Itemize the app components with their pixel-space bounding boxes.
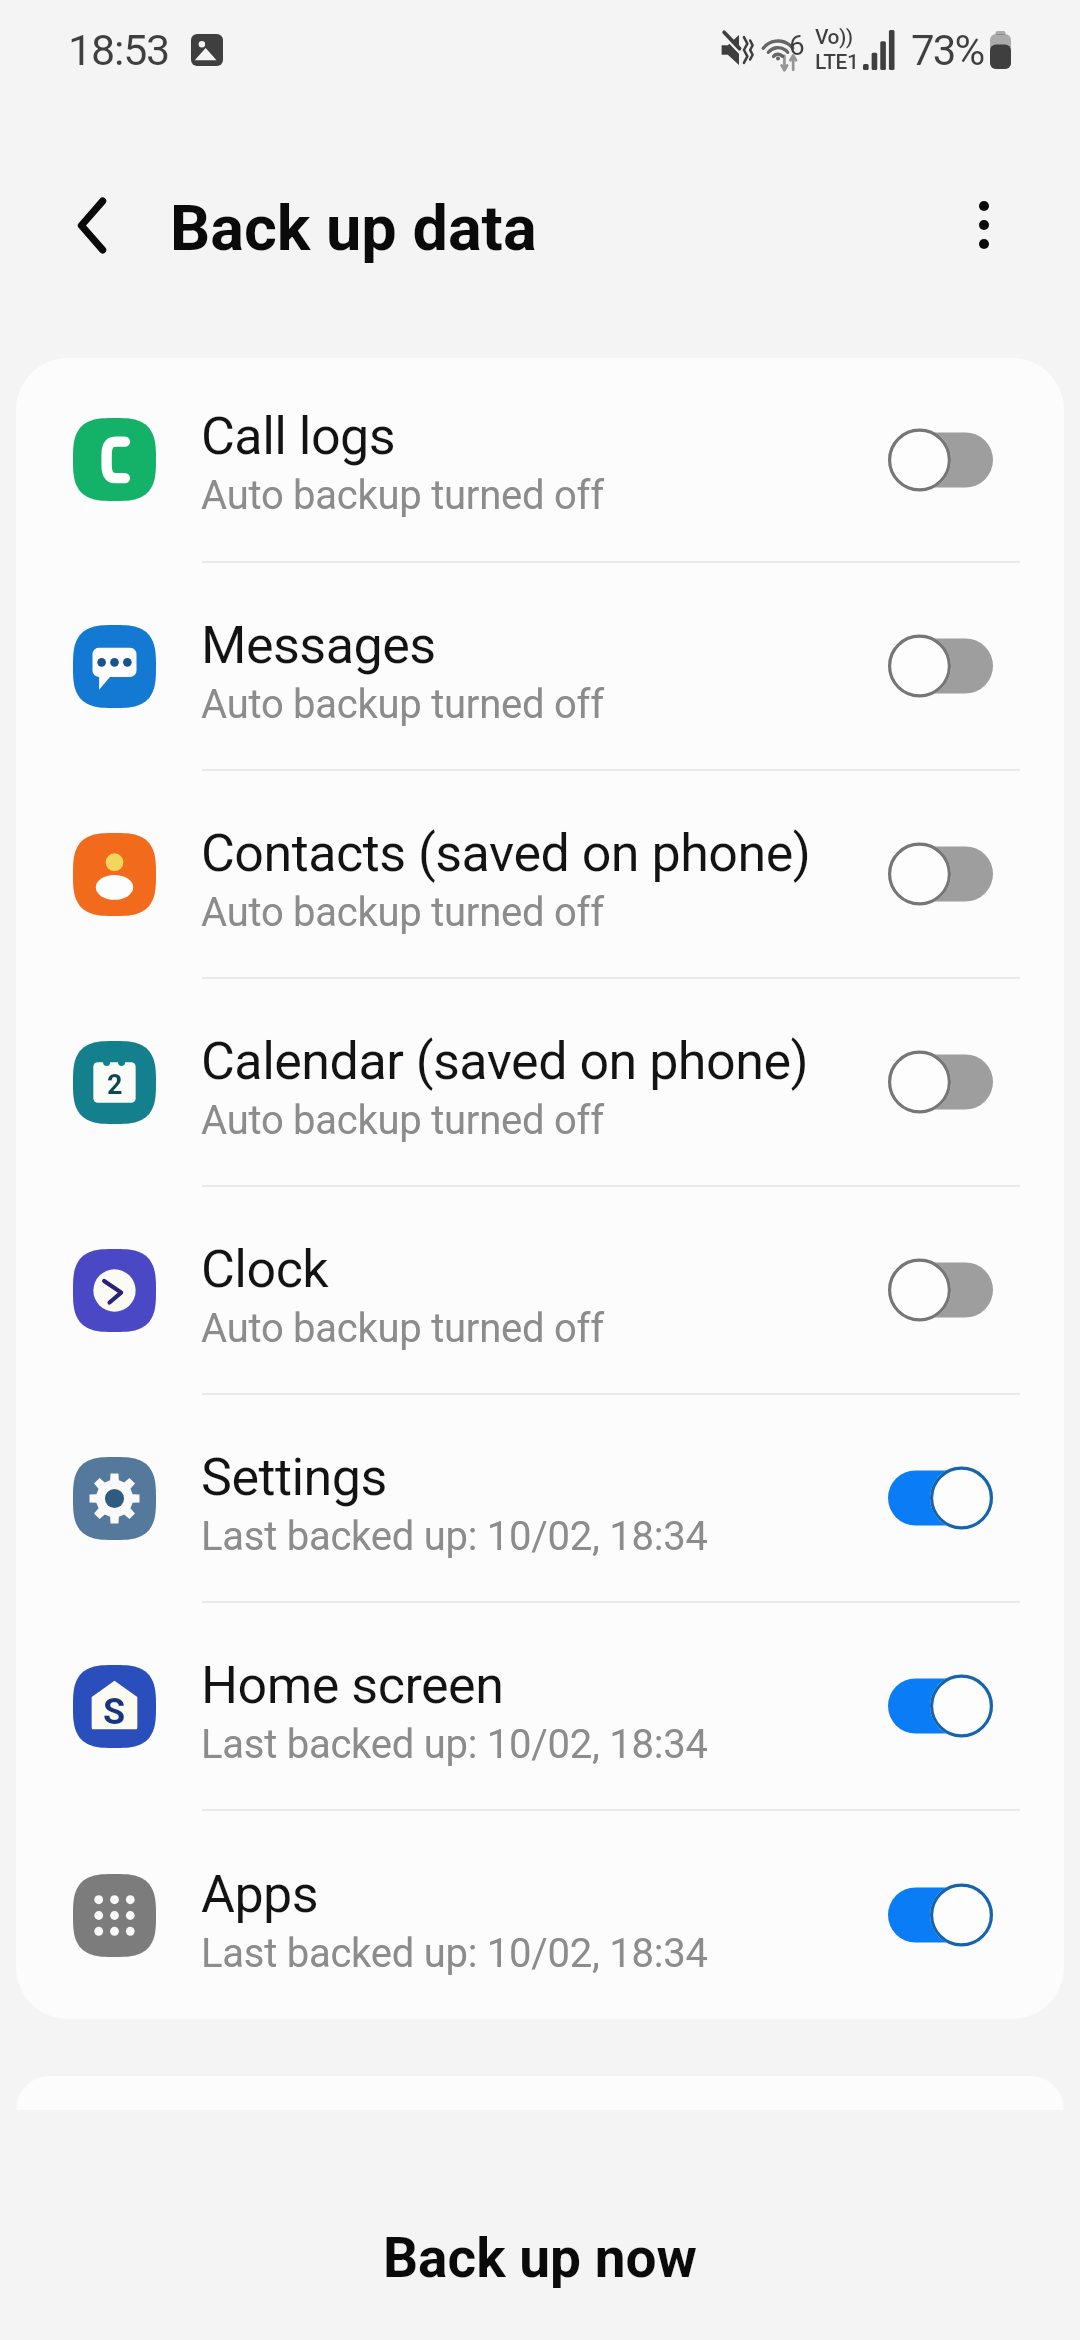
button[interactable]	[887, 1462, 994, 1534]
staticText: Clock	[201, 1239, 329, 1300]
staticText: Apps	[201, 1864, 319, 1925]
button[interactable]: Back up now	[0, 2175, 1080, 2340]
staticText: Auto backup turned off	[201, 1305, 604, 1352]
staticText: Back up now	[383, 2226, 697, 2290]
button[interactable]	[887, 424, 994, 496]
button[interactable]: Back	[48, 181, 136, 269]
staticText: Last backed up: 10/02, 18:34	[201, 1513, 708, 1560]
staticText: 73%	[911, 26, 984, 75]
staticText: Auto backup turned off	[201, 1097, 604, 1144]
staticText: Call logs	[201, 406, 396, 467]
button[interactable]: Settings	[16, 1395, 1064, 1603]
staticText: Auto backup turned off	[201, 472, 604, 519]
button[interactable]	[887, 838, 994, 910]
staticText: Home screen	[201, 1655, 504, 1716]
button[interactable]: Apps	[16, 1811, 1064, 2019]
button[interactable]: More options	[940, 181, 1028, 269]
button[interactable]	[887, 630, 994, 702]
staticText: Last backed up: 10/02, 18:34	[201, 1930, 708, 1977]
staticText: 2	[107, 1069, 123, 1101]
button[interactable]: Clock	[16, 1187, 1064, 1395]
button[interactable]: 2	[16, 979, 1064, 1187]
staticText: Last backed up: 10/02, 18:34	[201, 1721, 708, 1768]
staticText: Vo))	[815, 25, 853, 50]
button[interactable]	[887, 1670, 994, 1742]
staticText: Auto backup turned off	[201, 681, 604, 728]
staticText: Auto backup turned off	[201, 889, 604, 936]
staticText: 6	[789, 29, 805, 62]
button[interactable]	[887, 1046, 994, 1118]
staticText: LTE1	[815, 50, 859, 75]
button[interactable]	[887, 1879, 994, 1951]
button[interactable]: Contacts (saved on phone)	[16, 771, 1064, 979]
button[interactable]: Messages	[16, 563, 1064, 771]
staticText: Calendar (saved on phone)	[201, 1031, 809, 1092]
staticText: Messages	[201, 615, 436, 676]
staticText: Settings	[201, 1447, 387, 1508]
button[interactable]	[887, 1254, 994, 1326]
button[interactable]: S	[16, 1603, 1064, 1811]
staticText: 18:53	[68, 25, 170, 75]
staticText: Contacts (saved on phone)	[201, 823, 811, 884]
button[interactable]: Call logs	[16, 358, 1064, 563]
staticText: S	[103, 1691, 126, 1733]
staticText: Back up data	[170, 192, 537, 266]
